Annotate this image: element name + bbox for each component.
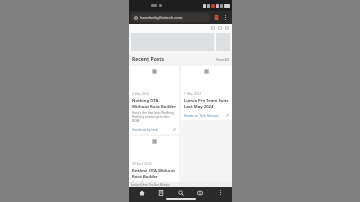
button[interactable]: Menu <box>213 187 227 198</box>
button[interactable]: 4 May 2024 <box>129 66 179 134</box>
staticText: View All <box>216 57 229 62</box>
staticText: 28 April 2024 <box>132 162 152 166</box>
button[interactable]: Action 1 <box>218 26 222 30</box>
button[interactable]: 28 April 2024 <box>129 136 179 182</box>
staticText: Hands on by tech <box>132 128 158 132</box>
staticText: Lumia Pro Team Suits Last May 2024 <box>184 98 229 109</box>
button[interactable]: handonbythetech.com <box>131 13 210 22</box>
staticText: 1 May 2024 <box>184 92 202 96</box>
button[interactable]: Home <box>135 187 149 198</box>
button[interactable]: Share post <box>225 114 229 118</box>
staticText: handonbythetech.com <box>140 15 183 20</box>
button[interactable]: Share post <box>172 128 176 132</box>
staticText: Here's the fast best Nothing Nothing pho… <box>132 111 176 123</box>
button[interactable]: Bookmarks <box>154 187 168 198</box>
button[interactable]: Downloads <box>212 13 221 22</box>
staticText: Ended from the key about how to get root… <box>132 181 172 182</box>
staticText: Android News The Best Website <box>131 183 170 187</box>
button[interactable]: Search <box>174 187 188 198</box>
staticText: 4 May 2024 <box>132 92 150 96</box>
staticText: Recent Posts <box>132 56 164 63</box>
button[interactable]: Action 2 <box>225 26 229 30</box>
staticText: Realme OTA Without Root Builder <box>132 168 176 179</box>
staticText: Nothing OTA Without Root Builder <box>132 98 176 109</box>
button[interactable]: Action 0 <box>211 26 215 30</box>
button[interactable]: More options <box>221 13 230 22</box>
button[interactable]: Tabs <box>193 187 207 198</box>
button[interactable]: View All <box>216 57 229 62</box>
staticText: Hands on Tech Reviews <box>184 114 219 118</box>
button[interactable]: 1 May 2024 <box>181 66 232 120</box>
